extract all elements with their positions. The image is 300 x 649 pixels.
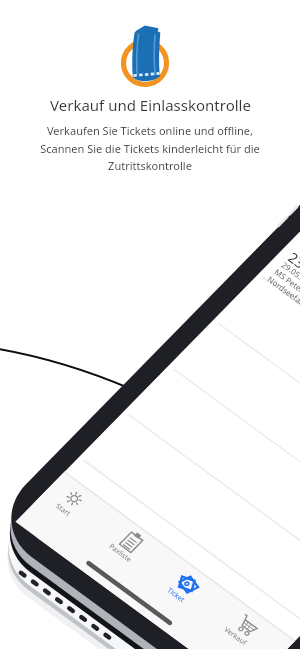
staticText: Verkaufen Sie Tickets online und offline…: [40, 123, 260, 173]
staticText: Verkauf und Einlasskontrolle: [50, 95, 251, 115]
